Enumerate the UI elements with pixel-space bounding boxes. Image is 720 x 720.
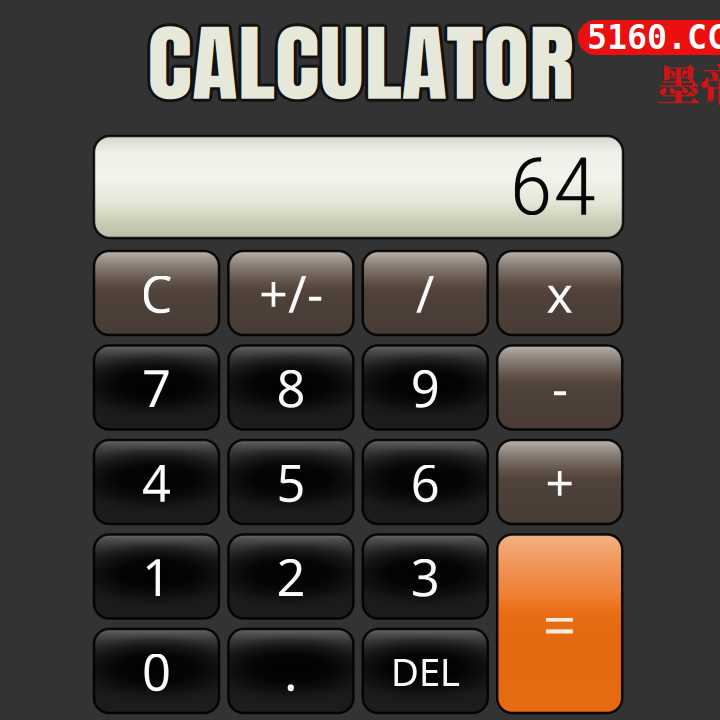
staticText: - [552, 354, 568, 421]
staticText: CALCULATOR [172, 0, 553, 125]
staticText: CALCULATOR [173, 0, 554, 126]
button[interactable]: = [497, 534, 622, 713]
button[interactable]: 1 [94, 534, 219, 618]
button[interactable]: 9 [363, 345, 488, 429]
staticText: 3 [411, 543, 440, 610]
button[interactable]: DEL [363, 629, 488, 713]
staticText: DEL [391, 645, 460, 697]
button[interactable]: 2 [228, 534, 353, 618]
staticText: CALCULATOR [172, 0, 553, 124]
button[interactable]: 5 [228, 440, 353, 524]
button[interactable]: x [497, 251, 622, 335]
button[interactable]: 8 [228, 345, 353, 429]
staticText: CALCULATOR [168, 0, 549, 125]
staticText: CALCULATOR [172, 2, 553, 128]
staticText: CALCULATOR [168, 2, 549, 128]
staticText: CALCULATOR [168, 1, 549, 127]
button[interactable]: 3 [363, 534, 488, 618]
staticText: CALCULATOR [170, 0, 551, 126]
staticText: 1 [142, 543, 171, 610]
staticText: + [545, 448, 574, 516]
staticText: +/- [259, 259, 323, 327]
staticText: CALCULATOR [172, 1, 553, 127]
staticText: 5 [276, 448, 305, 516]
button[interactable]: + [497, 440, 622, 524]
staticText: CALCULATOR [168, 0, 549, 124]
staticText: / [416, 259, 435, 327]
staticText: 6 [411, 448, 440, 516]
button[interactable]: - [497, 345, 622, 429]
staticText: 7 [142, 354, 171, 421]
staticText: 墨帝 [657, 52, 720, 113]
button[interactable]: 4 [94, 440, 219, 524]
button[interactable]: 6 [363, 440, 488, 524]
staticText: CALCULATOR [167, 0, 548, 126]
staticText: x [546, 259, 573, 327]
staticText: 4 [142, 448, 171, 516]
staticText: CALCULATOR [170, 3, 551, 129]
button[interactable]: C [94, 251, 219, 335]
staticText: 5160.CC [587, 18, 720, 57]
staticText: 8 [276, 354, 305, 421]
button[interactable]: 7 [94, 345, 219, 429]
staticText: = [543, 585, 577, 663]
button[interactable]: / [363, 251, 488, 335]
staticText: 9 [411, 354, 440, 421]
button[interactable]: 0 [94, 629, 219, 713]
staticText: 64 [514, 140, 592, 234]
staticText: 0 [142, 637, 171, 705]
staticText: C [140, 259, 172, 327]
staticText: 2 [276, 543, 305, 610]
staticText: . [284, 637, 298, 705]
button[interactable]: . [228, 629, 353, 713]
staticText: CALCULATOR [170, 0, 551, 123]
button[interactable]: +/- [228, 251, 353, 335]
